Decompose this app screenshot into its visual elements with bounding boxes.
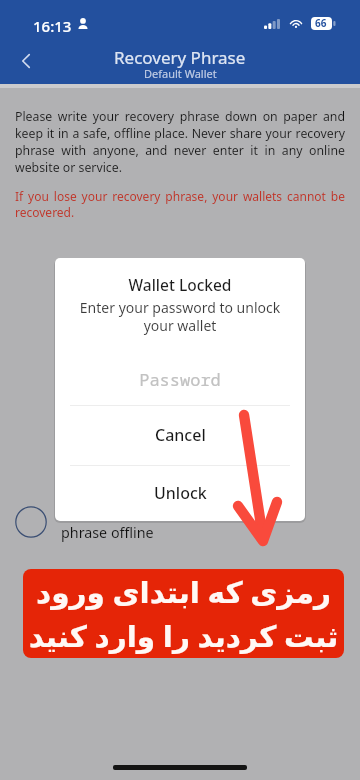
staticText: If you lose your recovery phrase, your w… (15, 188, 345, 220)
staticText: Cancel (155, 424, 206, 446)
button[interactable]: Cancel (55, 406, 305, 463)
staticText: 66 (315, 16, 327, 30)
staticText: Unlock (154, 482, 207, 504)
button[interactable]: رمزی که ابتدای ورود ثبت کردید را وارد کن… (23, 569, 344, 658)
staticText: Wallet Locked (55, 274, 305, 295)
staticText: Password (55, 368, 305, 391)
button[interactable]: Back (10, 45, 42, 77)
staticText: Enter your password to unlock your walle… (73, 298, 287, 335)
staticText: Please write your recovery phrase down o… (15, 108, 345, 176)
staticText: 16:13 (33, 16, 72, 36)
button[interactable]: Unlock (55, 464, 305, 521)
staticText: phrase offline (61, 523, 154, 542)
staticText: Default Wallet (144, 66, 217, 81)
staticText: Recovery Phrase (114, 46, 246, 69)
button[interactable]: Select option (15, 506, 47, 538)
staticText: رمزی که ابتدای ورود ثبت کردید را وارد کن… (23, 571, 344, 656)
